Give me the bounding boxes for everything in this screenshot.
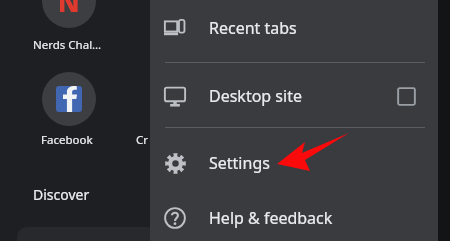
staticText: Discover [33,185,90,204]
staticText: Desktop site [209,85,302,107]
staticText: Recent tabs [209,17,297,39]
button[interactable]: Nerds Chalkboard shortcut [42,0,96,28]
staticText: Help & feedback [209,207,333,229]
staticText: Nerds Chal… [33,37,102,53]
button[interactable]: Facebook shortcut [42,72,96,126]
button[interactable]: Help & feedback [150,196,438,240]
button[interactable]: Settings [150,141,438,185]
staticText: Cr [136,132,149,148]
button[interactable]: Recent tabs [150,6,438,50]
staticText: Facebook [41,132,93,148]
staticText: Settings [209,152,270,174]
staticText: N [58,0,80,19]
button[interactable]: Desktop site [150,74,438,118]
